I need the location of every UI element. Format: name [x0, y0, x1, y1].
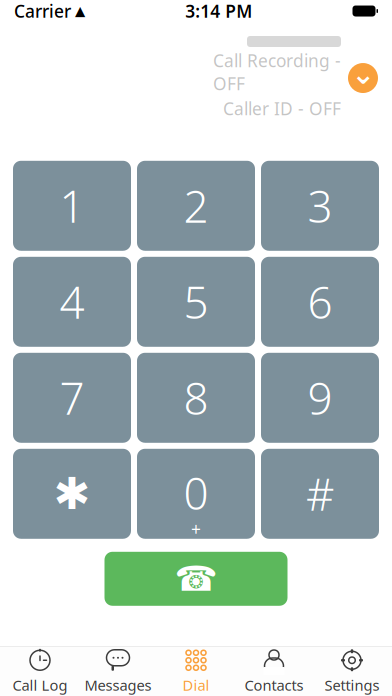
button[interactable]: Dial [157, 648, 235, 695]
staticText: Messages [84, 675, 151, 695]
button[interactable]: 3 [261, 161, 379, 251]
button[interactable]: 8 [137, 353, 255, 443]
staticText: + [191, 517, 201, 540]
staticText: ⌄ [351, 58, 374, 90]
staticText: 8 [183, 369, 208, 427]
staticText: 9 [307, 369, 332, 427]
staticText: 4 [59, 273, 84, 331]
staticText: ▲ [75, 3, 85, 18]
button[interactable]: Contacts [235, 648, 313, 695]
staticText: ✱ [53, 469, 90, 519]
staticText: Settings [324, 675, 379, 695]
staticText: 1 [59, 177, 84, 235]
staticText: Contacts [244, 675, 303, 695]
staticText: 2 [183, 177, 208, 235]
button[interactable]: Call [104, 552, 287, 606]
button[interactable]: # [261, 449, 379, 539]
button[interactable]: 1 [13, 161, 131, 251]
staticText: 3 [307, 177, 332, 235]
staticText: Carrier [14, 0, 71, 22]
button[interactable]: 7 [13, 353, 131, 443]
button[interactable]: Call Log [1, 648, 79, 695]
staticText: Call Log [12, 675, 67, 695]
staticText: 5 [183, 273, 208, 331]
staticText: ☎ [174, 559, 217, 598]
button[interactable]: 4 [13, 257, 131, 347]
button[interactable]: 5 [137, 257, 255, 347]
staticText: # [306, 465, 334, 523]
button[interactable]: Settings [313, 648, 391, 695]
button[interactable]: 2 [137, 161, 255, 251]
button[interactable]: ✱ [13, 449, 131, 539]
button[interactable]: 9 [261, 353, 379, 443]
staticText: Caller ID - OFF [223, 97, 341, 120]
staticText: 7 [59, 369, 84, 427]
staticText: 0 [183, 464, 208, 522]
staticText: 3:14 PM [185, 0, 252, 22]
staticText: Dial [182, 675, 209, 695]
staticText: Call Recording - OFF [213, 49, 341, 95]
staticText: 6 [307, 273, 332, 331]
button[interactable]: 6 [261, 257, 379, 347]
button[interactable]: Expand call options [341, 56, 385, 100]
button[interactable]: 0 [137, 449, 255, 539]
button[interactable]: Messages [79, 648, 157, 695]
